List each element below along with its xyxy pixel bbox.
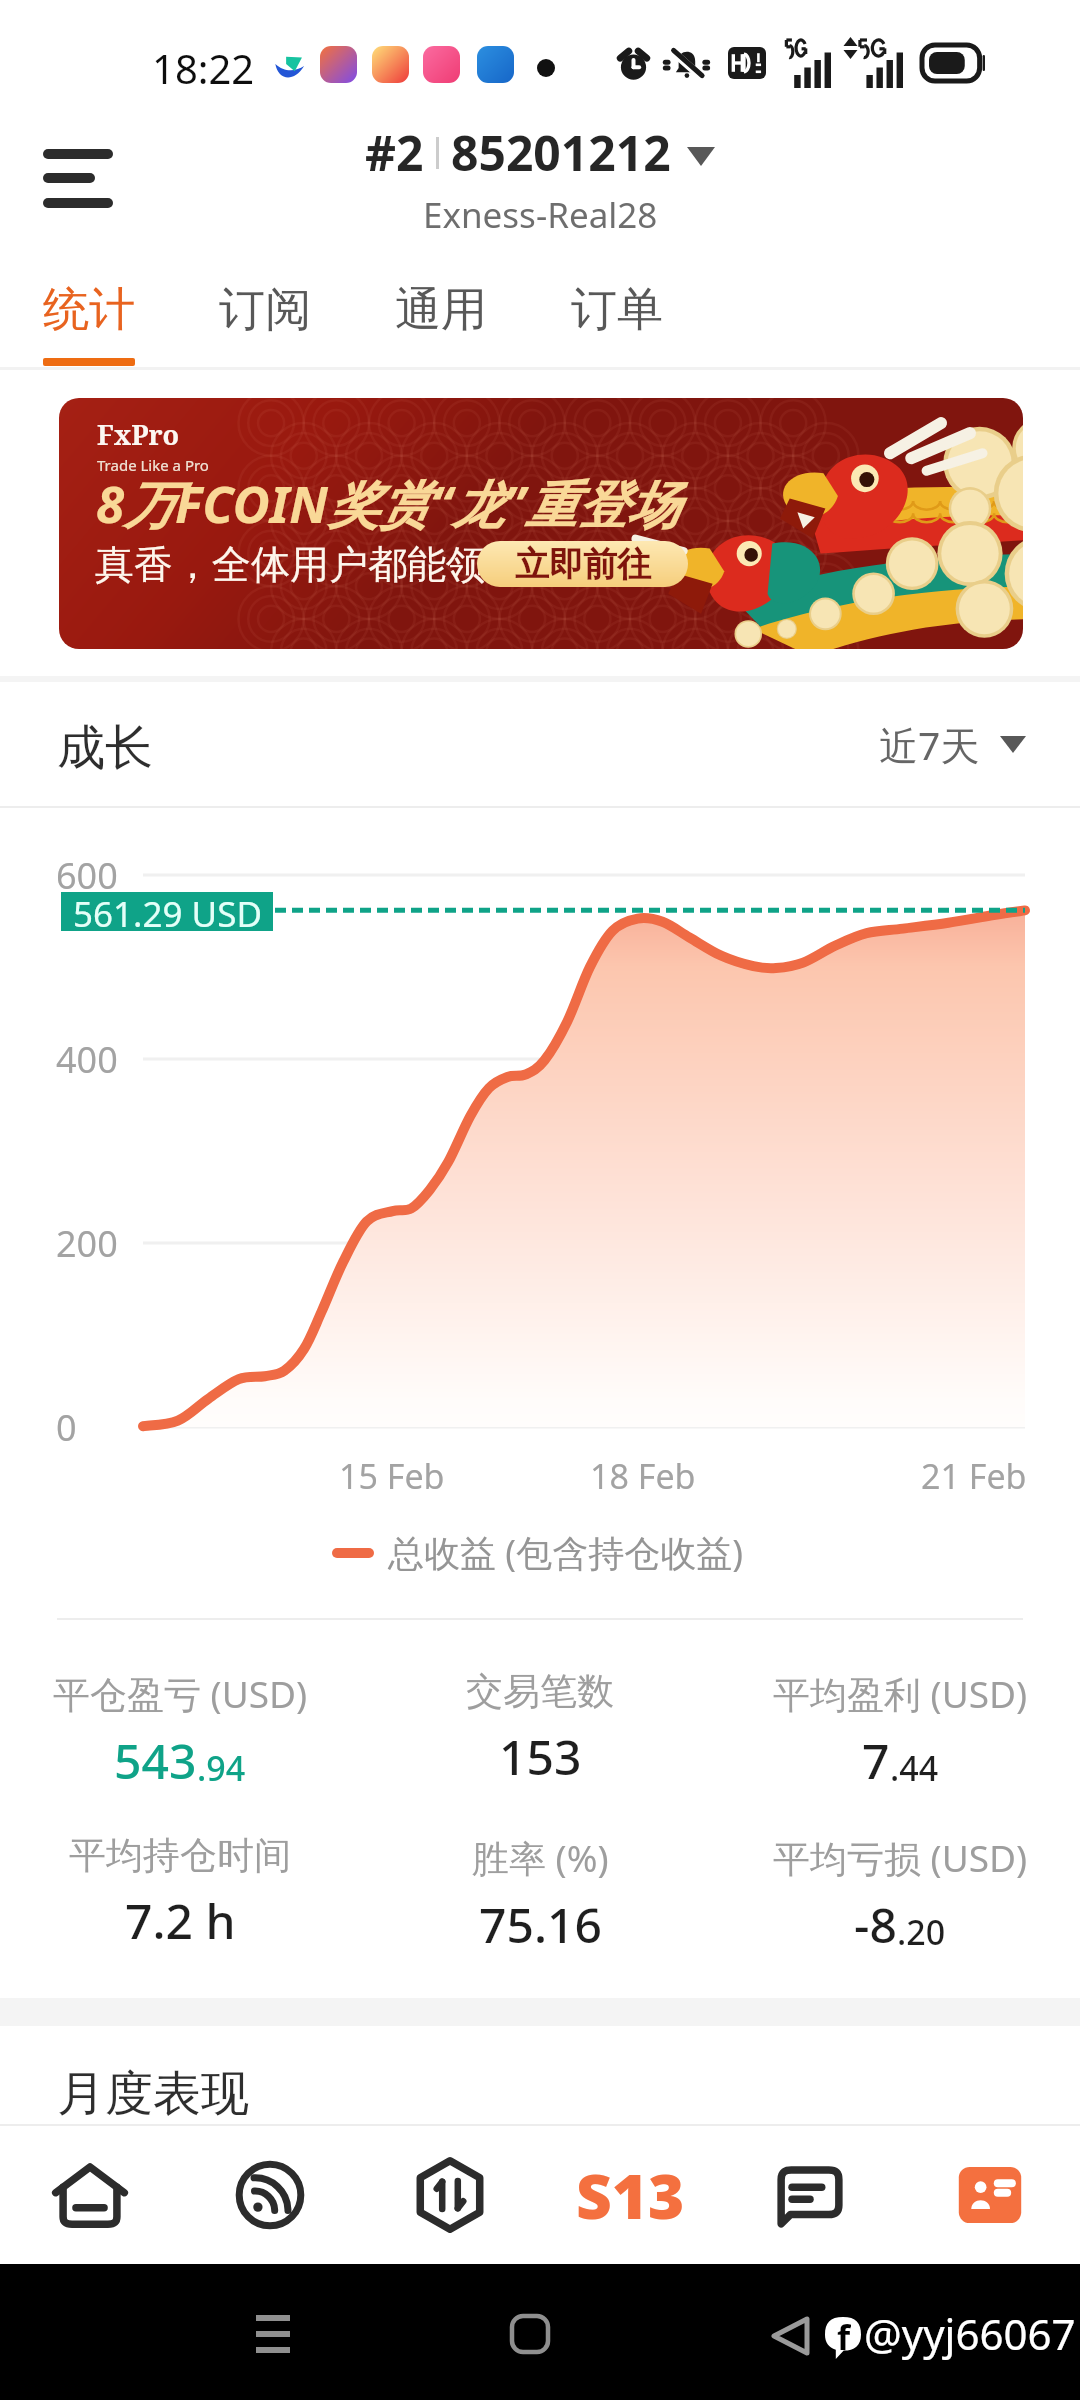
staticText: 总收益 (包含持仓收益) <box>388 1528 743 1577</box>
staticText: -8 <box>854 1892 897 1957</box>
staticText: 7 <box>862 1728 890 1793</box>
button[interactable]: Home <box>0 2126 180 2264</box>
staticText: 400 <box>56 1035 118 1084</box>
staticText: .94 <box>197 1745 246 1791</box>
button[interactable]: 立即前往 <box>477 541 688 587</box>
staticText: 153 <box>499 1724 582 1789</box>
staticText: 立即前往 <box>515 543 651 586</box>
staticText: 平均盈利 (USD) <box>773 1668 1028 1719</box>
staticText: 561.29 USD <box>73 890 262 929</box>
button[interactable]: Home <box>494 2298 566 2366</box>
staticText: 平仓盈亏 (USD) <box>53 1668 308 1719</box>
button[interactable]: Menu <box>20 126 136 230</box>
button[interactable]: Profile <box>900 2126 1080 2264</box>
staticText: 7.2 h <box>125 1888 236 1953</box>
button[interactable]: 订单 <box>570 262 664 366</box>
staticText: 平均持仓时间 <box>69 1832 291 1879</box>
staticText: .44 <box>890 1745 939 1791</box>
button[interactable]: Back <box>750 2292 830 2372</box>
staticText: 胜率 (%) <box>472 1832 609 1883</box>
staticText: 月度表现 <box>57 2064 249 2124</box>
staticText: 200 <box>56 1219 118 1268</box>
staticText: #2 <box>365 120 424 185</box>
button[interactable]: Recents <box>236 2298 308 2366</box>
staticText: 交易笔数 <box>466 1668 614 1715</box>
staticText: 600 <box>56 851 118 900</box>
staticText: 订阅 <box>219 281 311 339</box>
staticText: 543 <box>114 1728 197 1793</box>
staticText: 18:22 <box>152 41 255 95</box>
button[interactable]: FxPro <box>59 398 1023 649</box>
staticText: Trade Like a Pro <box>97 455 209 475</box>
staticText: f <box>837 2314 851 2356</box>
button[interactable]: Trade <box>360 2126 540 2264</box>
staticText: S13 <box>576 2153 685 2237</box>
staticText: .20 <box>897 1909 946 1955</box>
staticText: 近7天 <box>879 718 980 771</box>
staticText: Exness-Real28 <box>423 191 658 239</box>
button[interactable]: Messages <box>720 2126 900 2264</box>
staticText: 通用 <box>395 281 487 339</box>
button[interactable]: 近7天 <box>879 718 1026 771</box>
staticText: 8万FCOIN奖赏“龙”重登场 <box>96 468 679 538</box>
staticText: 订单 <box>571 281 663 339</box>
staticText: 统计 <box>43 281 135 339</box>
button[interactable]: 通用 <box>394 262 488 366</box>
button[interactable]: S13 <box>540 2126 720 2264</box>
staticText: 平均亏损 (USD) <box>773 1832 1028 1883</box>
button[interactable]: Signals <box>180 2126 360 2264</box>
button[interactable]: 统计 <box>42 262 136 366</box>
staticText: 75.16 <box>479 1892 602 1957</box>
staticText: 18 Feb <box>590 1453 696 1499</box>
staticText: 0 <box>56 1403 77 1452</box>
button[interactable]: 订阅 <box>218 262 312 366</box>
staticText: 真香，全体用户都能领 <box>95 540 485 589</box>
staticText: FxPro <box>97 416 180 453</box>
staticText: 21 Feb <box>921 1453 1027 1499</box>
staticText: 85201212 <box>451 120 671 185</box>
staticText: @yyj66067 <box>864 2305 1076 2362</box>
staticText: 成长 <box>57 718 153 778</box>
staticText: 15 Feb <box>339 1453 445 1499</box>
